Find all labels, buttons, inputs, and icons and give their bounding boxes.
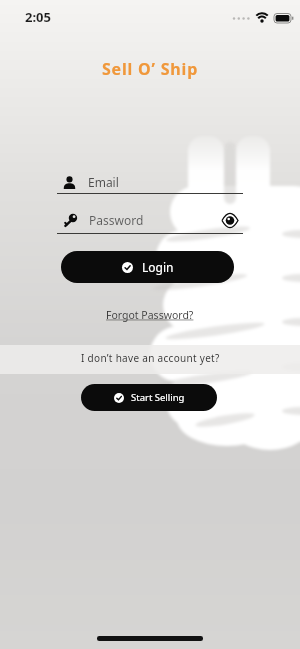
staticText: Password <box>89 212 144 228</box>
staticText: Email <box>88 174 119 190</box>
staticText: Start Selling <box>131 391 185 404</box>
staticText: Login <box>142 259 174 275</box>
staticText: I don’t have an account yet? <box>81 351 220 365</box>
button[interactable]: Login <box>61 251 234 283</box>
staticText: 2:05 <box>25 8 51 26</box>
staticText: Sell O’ Ship <box>102 58 199 80</box>
button[interactable]: Forgot Password? <box>106 308 194 322</box>
button[interactable]: Email <box>63 174 119 190</box>
button[interactable]: Start Selling <box>81 384 217 411</box>
button[interactable]: Password <box>57 212 243 228</box>
